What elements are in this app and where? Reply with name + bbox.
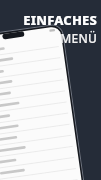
other: Phone showing simple menu	[0, 0, 101, 180]
button[interactable]: EINFACHES	[23, 11, 97, 46]
staticText: MENÜ	[60, 30, 97, 46]
staticText: EINFACHES	[23, 11, 97, 29]
